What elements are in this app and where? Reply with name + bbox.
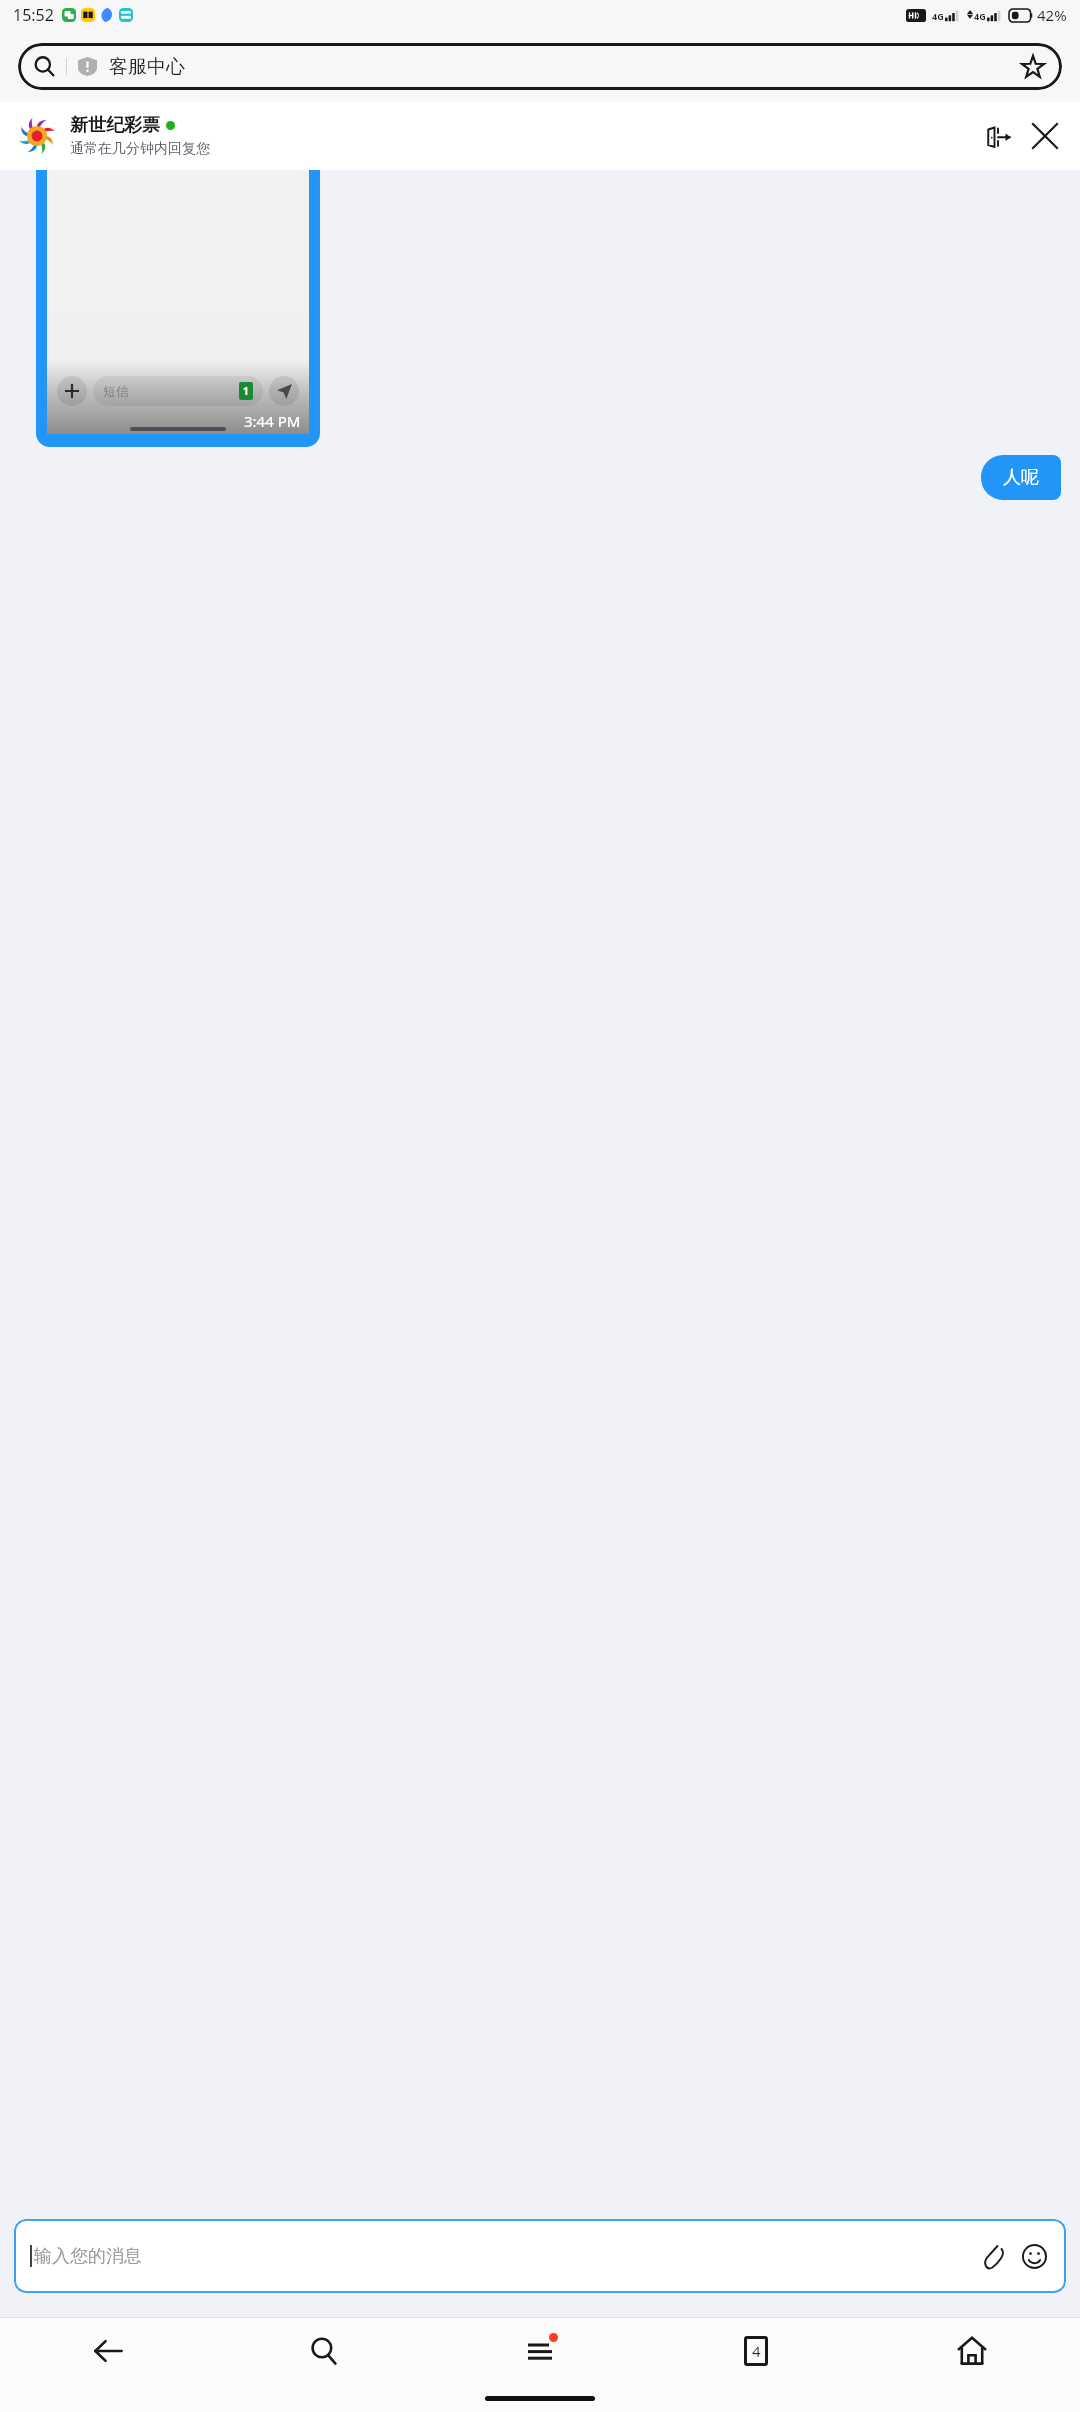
staticText: 短信 xyxy=(103,383,129,399)
button[interactable]: Menu xyxy=(432,2318,648,2384)
staticText: 输入您的消息 xyxy=(34,2245,142,2268)
button[interactable]: 人呢 xyxy=(981,455,1061,500)
staticText: 客服中心 xyxy=(109,55,185,79)
staticText: 3:44 PM xyxy=(244,411,301,431)
button[interactable]: Exit chat xyxy=(982,119,1016,153)
staticText: 4G xyxy=(932,10,944,22)
staticText: 新世纪彩票 xyxy=(70,114,160,137)
button[interactable]: Search xyxy=(216,2318,432,2384)
staticText: 4G xyxy=(974,10,986,22)
button[interactable]: Bookmark xyxy=(1020,54,1046,80)
staticText: 42% xyxy=(1037,5,1067,25)
button[interactable]: Home xyxy=(864,2318,1080,2384)
staticText: 1 xyxy=(243,384,249,398)
button[interactable]: Close xyxy=(1028,119,1062,153)
staticText: 人呢 xyxy=(1003,466,1039,489)
button[interactable]: 输入您的消息 xyxy=(14,2219,1066,2293)
button[interactable]: Emoji xyxy=(1018,2240,1050,2272)
button[interactable]: Back xyxy=(0,2318,216,2384)
staticText: 通常在几分钟内回复您 xyxy=(70,140,210,158)
button[interactable]: 客服中心 xyxy=(18,43,1062,90)
staticText: 4 xyxy=(752,2341,761,2361)
button[interactable]: Attach file xyxy=(978,2240,1010,2272)
staticText: 15:52 xyxy=(13,4,54,26)
button[interactable]: Tabs xyxy=(648,2318,864,2384)
